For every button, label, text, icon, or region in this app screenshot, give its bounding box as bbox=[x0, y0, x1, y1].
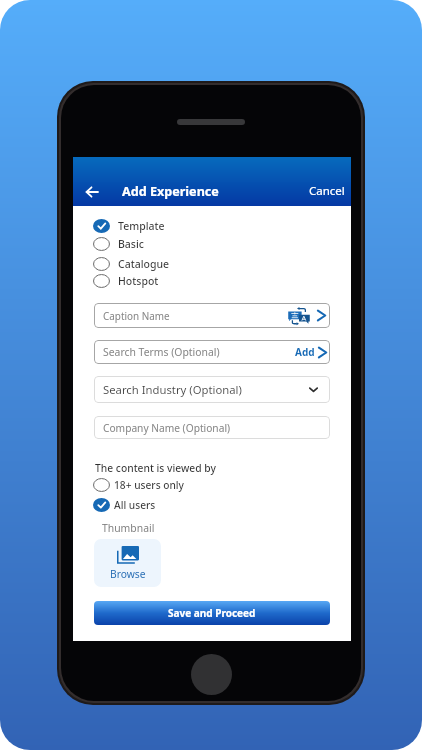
button[interactable]: Save and Proceed bbox=[94, 601, 330, 625]
staticText: Thumbnail bbox=[102, 521, 155, 535]
staticText: Hotspot bbox=[118, 274, 159, 288]
staticText: Caption Name bbox=[103, 309, 170, 322]
button[interactable]: Cancel bbox=[302, 178, 352, 204]
button[interactable]: Basic bbox=[93, 233, 144, 255]
button[interactable]: Caption Name bbox=[94, 303, 330, 328]
button[interactable]: Browse bbox=[94, 539, 161, 587]
staticText: Add Experience bbox=[122, 183, 219, 200]
staticText: Template bbox=[118, 219, 165, 233]
button[interactable]: Company Name (Optional) bbox=[94, 416, 330, 439]
staticText: All users bbox=[114, 498, 156, 512]
staticText: 18+ users only bbox=[114, 478, 184, 492]
staticText: Catalogue bbox=[118, 257, 170, 271]
staticText: Save and Proceed bbox=[168, 606, 256, 620]
staticText: Company Name (Optional) bbox=[103, 421, 231, 435]
button[interactable]: Search Terms (Optional) bbox=[94, 340, 330, 364]
button[interactable]: Back bbox=[80, 180, 104, 204]
staticText: Add bbox=[295, 345, 315, 359]
staticText: Cancel bbox=[309, 183, 345, 199]
button[interactable]: Template bbox=[93, 215, 165, 237]
button[interactable]: 18+ users only bbox=[93, 474, 184, 496]
staticText: Browse bbox=[110, 567, 146, 581]
staticText: Search Industry (Optional) bbox=[103, 382, 242, 397]
button[interactable]: Hotspot bbox=[93, 270, 159, 292]
staticText: The content is viewed by bbox=[95, 461, 216, 475]
button[interactable]: Search Industry (Optional) bbox=[94, 376, 330, 403]
staticText: Basic bbox=[118, 237, 144, 251]
button[interactable]: All users bbox=[93, 494, 156, 516]
button[interactable]: Catalogue bbox=[93, 253, 170, 275]
staticText: Search Terms (Optional) bbox=[103, 345, 220, 359]
